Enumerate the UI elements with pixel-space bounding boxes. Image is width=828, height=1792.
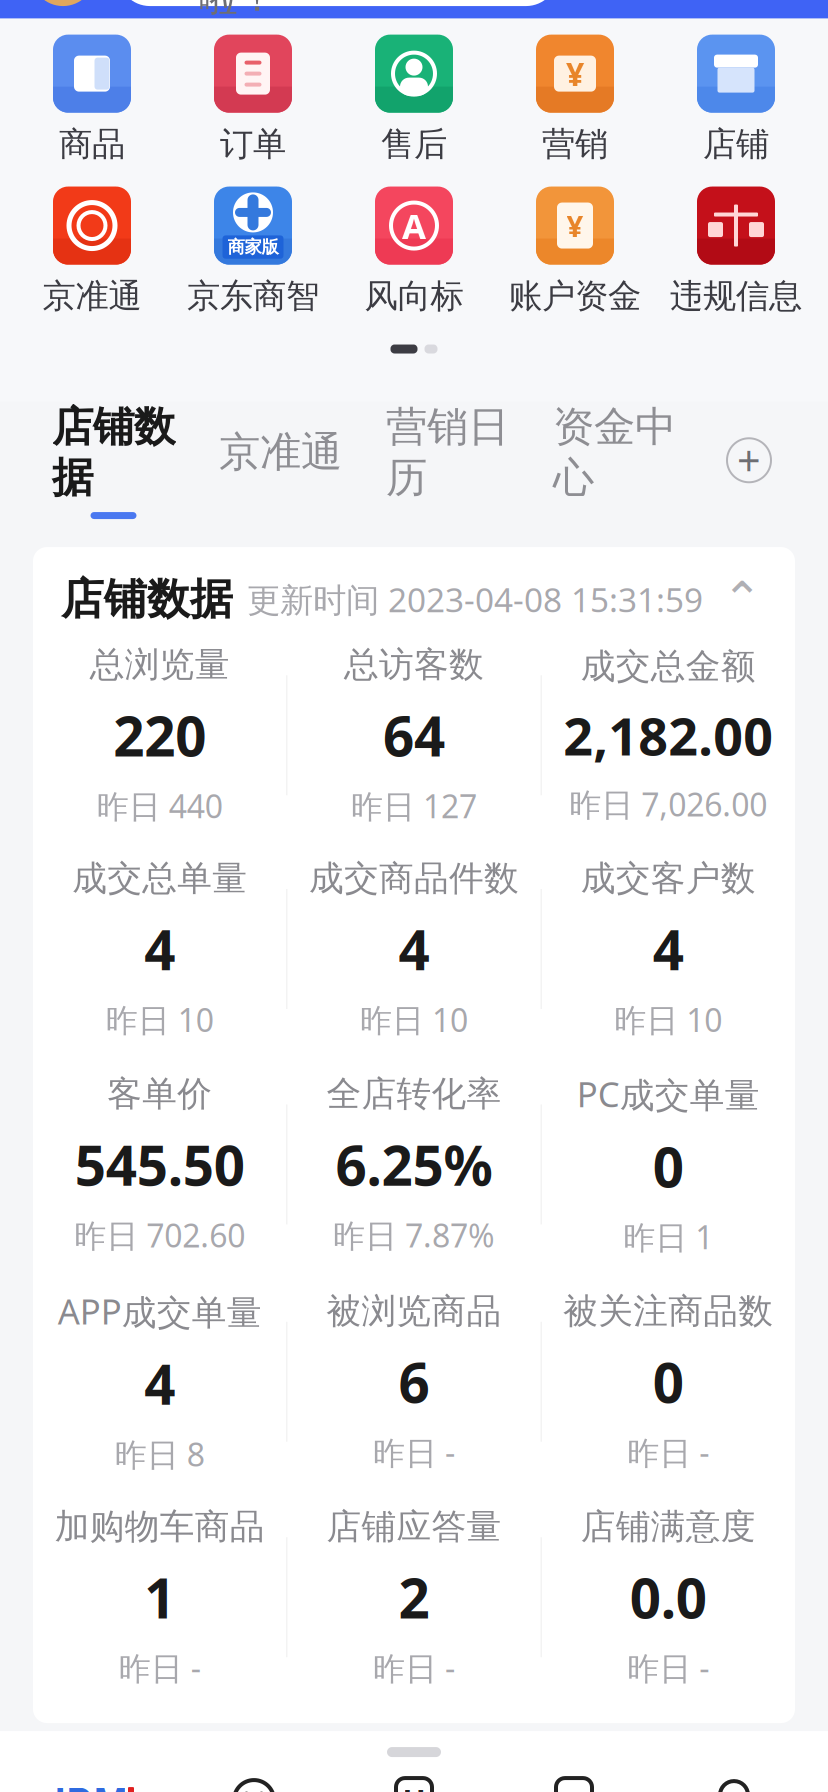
staticText: 4 — [144, 913, 175, 985]
staticText: 商品 — [59, 124, 125, 164]
staticText: 售后 — [381, 124, 447, 164]
staticText: 4 — [398, 913, 429, 985]
staticText: 店铺应答量 — [326, 1505, 501, 1548]
staticText: 昨日 127 — [351, 785, 477, 827]
staticText: 成交客户数 — [581, 857, 756, 900]
staticText: ¥ — [566, 206, 583, 245]
button[interactable]: A — [333, 187, 494, 316]
staticText: 昨日 440 — [97, 785, 223, 827]
staticText: 昨日 1 — [623, 1216, 713, 1258]
staticText: 昨日 - — [119, 1647, 201, 1689]
button[interactable]: JDM — [14, 1777, 174, 1792]
staticText: 0 — [653, 1345, 684, 1418]
staticText: 商家版 — [227, 236, 278, 258]
staticText: 营销 — [542, 124, 608, 164]
staticText: 4 — [653, 913, 684, 985]
staticText: 昨日 702.60 — [74, 1214, 245, 1256]
staticText: 6 — [398, 1345, 429, 1418]
staticText: 545.50 — [75, 1128, 245, 1201]
staticText: 京准通 — [219, 427, 342, 478]
staticText: 总浏览量 — [90, 643, 230, 686]
button[interactable]: 添加模块 — [722, 433, 776, 487]
staticText: 1 — [144, 1561, 175, 1634]
button[interactable]: 收起 — [717, 576, 767, 622]
staticText: + — [737, 433, 761, 488]
staticText: 2,182.00 — [563, 701, 773, 770]
staticText: 成交商品件数 — [309, 857, 519, 900]
staticText: 加购物车商品 — [55, 1505, 265, 1548]
staticText: U — [402, 1780, 425, 1792]
staticText: 成交总单量 — [72, 857, 247, 900]
staticText: 风向标 — [364, 276, 463, 316]
staticText: APP成交单量 — [58, 1288, 262, 1334]
staticText: 昨日 10 — [106, 998, 214, 1041]
staticText: 4 — [144, 1347, 175, 1420]
button[interactable]: 营销日历 — [386, 401, 509, 519]
staticText: 昨日 7,026.00 — [569, 783, 767, 825]
staticText: 店铺数据 — [52, 401, 175, 503]
staticText: 被浏览商品 — [326, 1290, 501, 1332]
button[interactable]: 售后 — [333, 35, 494, 164]
staticText: 昨日 - — [373, 1647, 455, 1689]
button[interactable]: ¥ — [494, 187, 655, 316]
staticText: PC成交单量 — [577, 1071, 760, 1117]
staticText: 店铺数据 — [61, 573, 233, 625]
button[interactable]: 店铺头像 — [26, 0, 100, 11]
button[interactable]: 店铺 — [655, 35, 816, 164]
staticText: A — [402, 202, 426, 248]
button[interactable]: 京准通 — [11, 187, 172, 316]
staticText: 6.25% — [335, 1128, 492, 1201]
staticText: 昨日 - — [627, 1431, 709, 1474]
staticText: 昨日 10 — [614, 998, 722, 1041]
button[interactable]: 京准通 — [219, 427, 342, 494]
staticText: 支付优惠功能上线啦！ — [199, 0, 511, 22]
staticText: 昨日 10 — [360, 998, 468, 1041]
staticText: 京东商智 — [187, 276, 319, 316]
staticText: 0.0 — [630, 1561, 707, 1634]
button[interactable]: 我 — [654, 1777, 814, 1792]
staticText: ⌃ — [722, 572, 762, 626]
button[interactable]: 商家版 — [172, 187, 333, 316]
button[interactable]: 麦头条 — [494, 1777, 654, 1792]
staticText: 220 — [113, 699, 206, 772]
staticText: 被关注商品数 — [563, 1290, 773, 1332]
staticText: 成交总金额 — [581, 645, 756, 688]
button[interactable]: 商品 — [11, 35, 172, 164]
staticText: 违规信息 — [670, 276, 802, 316]
staticText: 更新时间 2023-04-08 15:31:59 — [247, 577, 703, 621]
button[interactable]: 违规信息 — [655, 187, 816, 316]
staticText: 账户资金 — [509, 276, 641, 316]
staticText: 总访客数 — [344, 643, 484, 686]
staticText: 64 — [383, 699, 445, 772]
button[interactable]: 消息 — [174, 1777, 334, 1792]
staticText: 营销日历 — [386, 401, 509, 503]
staticText: 昨日 8 — [115, 1433, 205, 1475]
staticText: 0 — [653, 1130, 684, 1203]
staticText: 2 — [398, 1561, 429, 1634]
staticText: 昨日 7.87% — [333, 1214, 495, 1256]
staticText: 全店转化率 — [326, 1073, 501, 1115]
button[interactable]: ¥ — [494, 35, 655, 164]
button[interactable]: U — [334, 1777, 494, 1792]
button[interactable]: 订单 — [172, 35, 333, 164]
staticText: 资金中心 — [553, 401, 676, 503]
staticText: 店铺 — [703, 124, 769, 164]
staticText: 京准通 — [42, 276, 141, 316]
staticText: JDM — [54, 1775, 128, 1792]
staticText: 订单 — [220, 124, 286, 164]
button[interactable]: 资金中心 — [553, 401, 676, 519]
staticText: 客单价 — [107, 1073, 212, 1115]
staticText: 昨日 - — [373, 1431, 455, 1474]
button[interactable]: 🔍 — [118, 0, 558, 6]
staticText: ¥ — [566, 52, 584, 95]
staticText: 昨日 - — [627, 1647, 709, 1689]
button[interactable]: 店铺数据 — [52, 401, 175, 519]
staticText: 店铺满意度 — [581, 1505, 756, 1548]
